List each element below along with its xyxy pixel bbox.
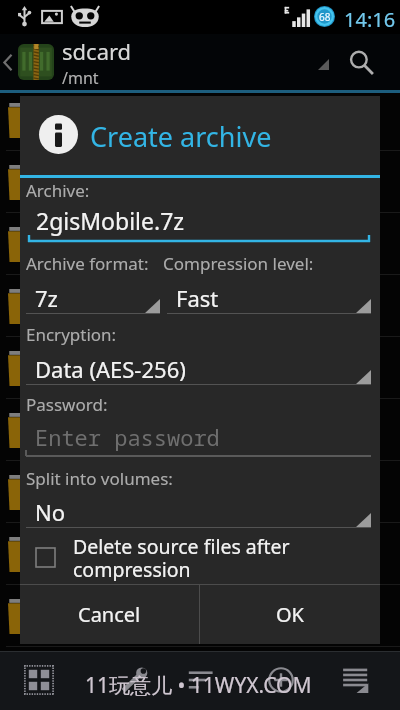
button[interactable] bbox=[0, 279, 400, 341]
button[interactable] bbox=[0, 527, 400, 589]
button[interactable] bbox=[0, 217, 400, 279]
button[interactable]: Sort bbox=[177, 657, 223, 703]
staticText: Password: bbox=[26, 393, 108, 416]
staticText: /mnt bbox=[62, 67, 99, 89]
button[interactable]: OK bbox=[200, 585, 380, 644]
staticText: 14:16 bbox=[344, 6, 396, 33]
button[interactable] bbox=[0, 589, 400, 651]
staticText: Archive format: bbox=[26, 252, 149, 275]
staticText: Split into volumes: bbox=[26, 467, 173, 490]
staticText: 68 bbox=[319, 10, 331, 24]
button[interactable]: Search bbox=[345, 46, 379, 80]
button[interactable]: No bbox=[26, 496, 371, 528]
button[interactable] bbox=[0, 403, 400, 465]
staticText: Cancel bbox=[78, 601, 141, 628]
staticText: Data (AES-256) bbox=[35, 354, 186, 384]
button[interactable]: New bbox=[258, 657, 304, 703]
button[interactable]: Cancel bbox=[20, 585, 199, 644]
staticText: Create archive bbox=[90, 118, 272, 155]
staticText: 7z bbox=[35, 283, 58, 313]
button[interactable]: Data (AES-256) bbox=[26, 353, 371, 385]
button[interactable] bbox=[0, 465, 400, 527]
staticText: Fast bbox=[176, 283, 219, 313]
button[interactable] bbox=[0, 341, 400, 403]
button[interactable]: Fast bbox=[167, 282, 371, 314]
staticText: Enter password bbox=[35, 422, 220, 452]
staticText: No bbox=[35, 497, 66, 527]
staticText: sdcard bbox=[62, 36, 132, 66]
button[interactable] bbox=[0, 93, 400, 155]
staticText: Encryption: bbox=[26, 323, 117, 346]
staticText: Archive: bbox=[26, 179, 90, 202]
staticText: 11玩意儿 • 11WYX.COM bbox=[85, 671, 312, 700]
button[interactable]: Tools bbox=[112, 657, 158, 703]
button[interactable]: Delete source files after compression bbox=[26, 533, 371, 581]
staticText: Delete source files after compression bbox=[73, 533, 371, 581]
button[interactable]: Overflow bbox=[318, 59, 329, 70]
button[interactable] bbox=[0, 155, 400, 217]
staticText: OK bbox=[276, 601, 304, 628]
button[interactable]: sdcard bbox=[0, 34, 153, 90]
button[interactable]: Grid view bbox=[16, 657, 62, 703]
staticText: Compression level: bbox=[163, 252, 314, 275]
button[interactable]: 7z bbox=[26, 282, 160, 314]
button[interactable]: Menu bbox=[333, 657, 379, 703]
staticText: 2gisMobile.7z bbox=[36, 205, 185, 236]
